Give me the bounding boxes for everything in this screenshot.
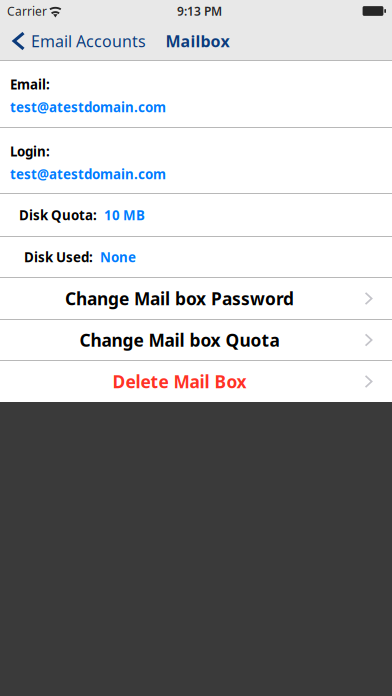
button[interactable]: Change Mail box Password (0, 278, 392, 319)
staticText: test@atestdomain.com (10, 98, 166, 116)
staticText: 9:13 PM (177, 3, 222, 19)
button[interactable]: Email Accounts (0, 22, 154, 59)
button[interactable]: Change Mail box Quota (0, 320, 392, 360)
staticText: 10 MB (104, 206, 145, 224)
staticText: Delete Mail Box (112, 370, 246, 393)
staticText: test@atestdomain.com (10, 165, 166, 183)
staticText: Mailbox (165, 30, 229, 52)
staticText: Disk Used: (24, 248, 93, 266)
staticText: Disk Quota: (19, 206, 97, 224)
staticText: Carrier (7, 3, 47, 19)
staticText: Email Accounts (31, 30, 146, 52)
staticText: Login: (10, 142, 50, 160)
staticText: Change Mail box Quota (79, 328, 279, 351)
button[interactable]: Delete Mail Box (0, 361, 392, 402)
staticText: Email: (10, 75, 50, 93)
staticText: Change Mail box Password (65, 287, 294, 310)
staticText: None (100, 248, 136, 266)
